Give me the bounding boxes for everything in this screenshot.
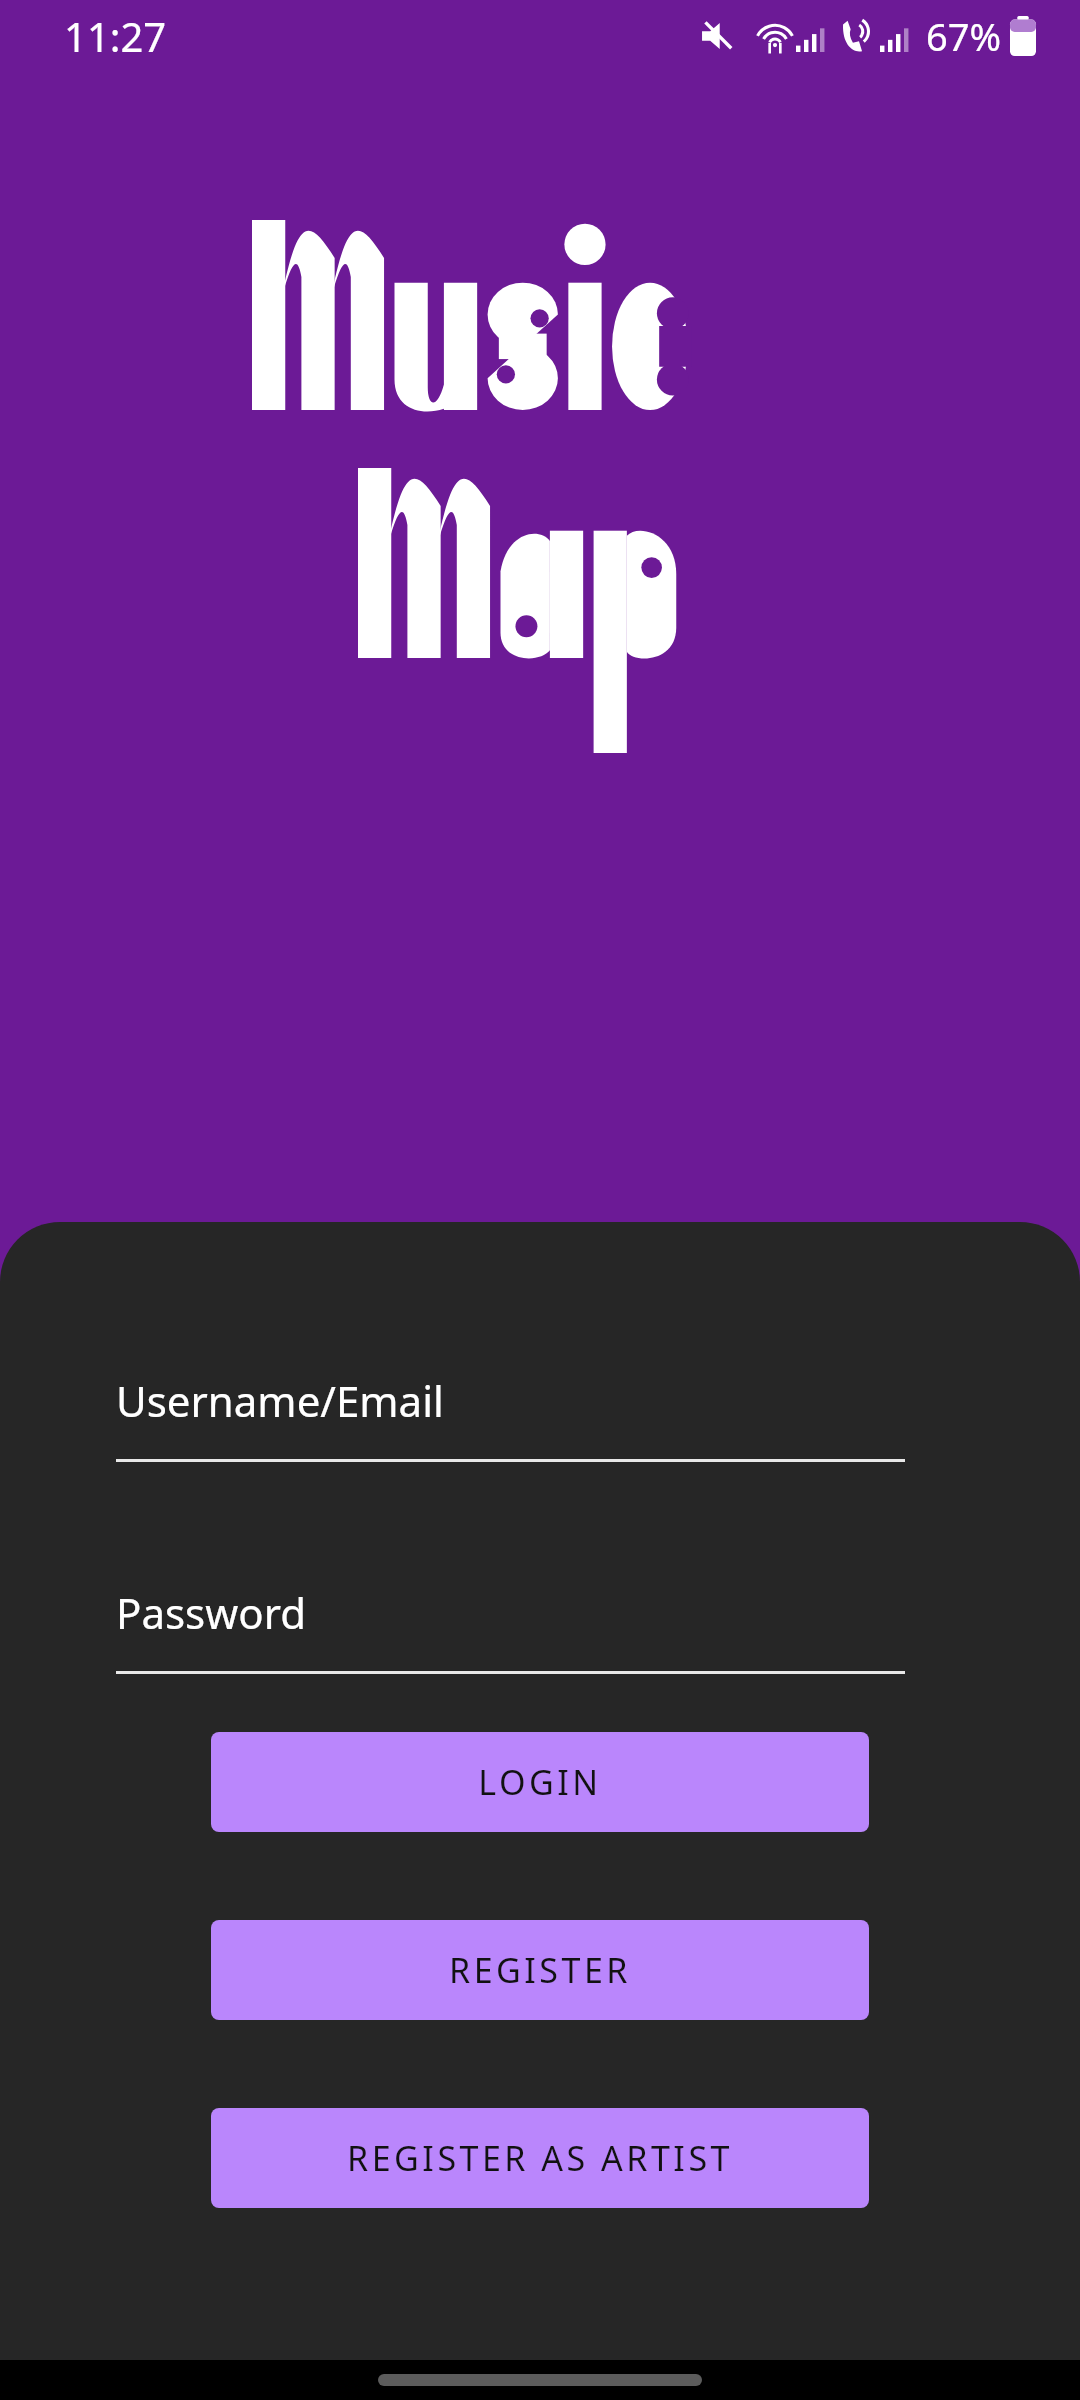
staticText: REGISTER (449, 1947, 631, 1993)
button[interactable]: REGISTER (211, 1920, 869, 2020)
staticText: 11:27 (64, 9, 167, 63)
staticText: Password (116, 1584, 306, 1641)
button[interactable]: Password (116, 1584, 905, 1674)
other: Music Map logo (0, 90, 1080, 710)
button[interactable]: Username/Email (116, 1372, 905, 1462)
button[interactable]: LOGIN (211, 1732, 869, 1832)
button[interactable]: REGISTER AS ARTIST (211, 2108, 869, 2208)
staticText: Username/Email (116, 1372, 444, 1429)
staticText: REGISTER AS ARTIST (347, 2135, 733, 2181)
staticText: LOGIN (478, 1759, 602, 1805)
staticText: 67% (926, 10, 1002, 62)
